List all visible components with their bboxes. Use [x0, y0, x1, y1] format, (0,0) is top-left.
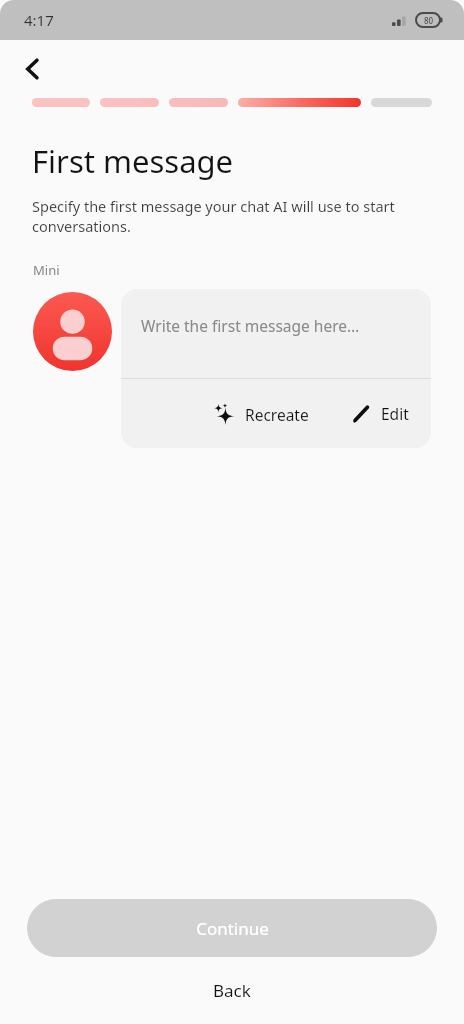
button[interactable]: Avatar Mini: [33, 292, 112, 371]
staticText: Back: [213, 979, 251, 1002]
staticText: First message: [32, 140, 234, 182]
staticText: Specify the first message your chat AI w…: [32, 196, 424, 237]
staticText: Edit: [381, 403, 409, 424]
staticText: Continue: [196, 917, 269, 940]
button[interactable]: Back: [191, 971, 273, 1010]
button[interactable]: Recreate: [210, 397, 313, 431]
staticText: 80: [424, 15, 434, 26]
staticText: Recreate: [245, 404, 309, 425]
staticText: 4:17: [24, 10, 54, 30]
button[interactable]: Write the first message here…: [121, 289, 431, 448]
staticText: Write the first message here…: [141, 315, 360, 336]
button[interactable]: Back: [12, 48, 54, 90]
button[interactable]: Edit: [347, 397, 413, 430]
staticText: Mini: [33, 261, 60, 279]
button[interactable]: Continue: [27, 899, 437, 957]
